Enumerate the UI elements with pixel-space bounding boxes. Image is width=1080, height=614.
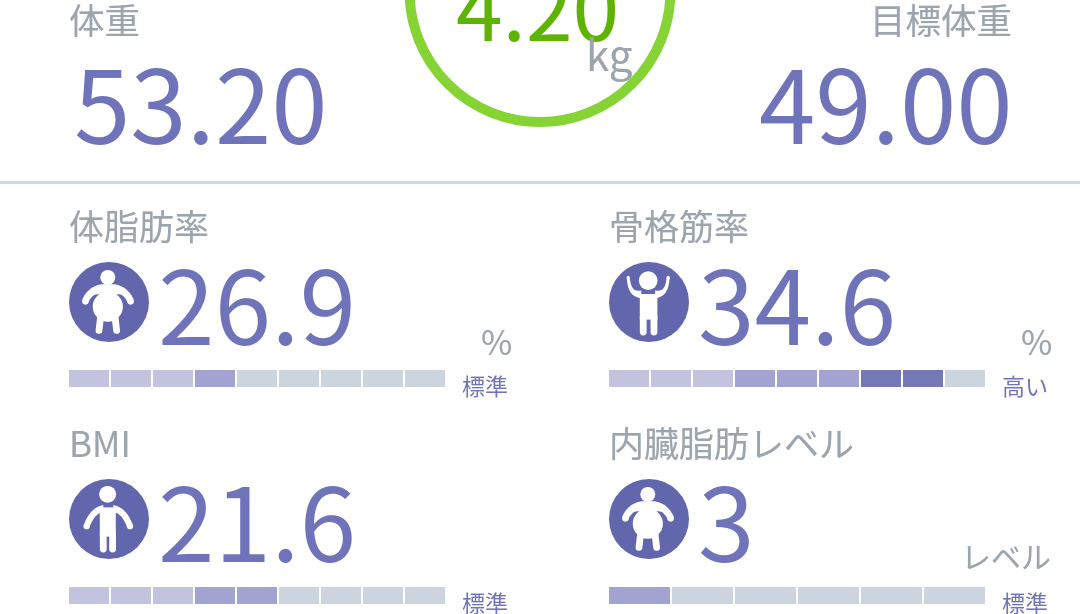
- staticText: 3: [698, 444, 755, 592]
- staticText: 53.20: [74, 26, 328, 173]
- button[interactable]: 内臓脂肪レベル: [540, 402, 1080, 614]
- button[interactable]: BMI: [0, 402, 540, 614]
- staticText: 標準: [462, 368, 508, 401]
- staticText: 目標体重: [870, 0, 1013, 44]
- button[interactable]: 体脂肪率: [0, 185, 540, 402]
- staticText: 高い: [1002, 368, 1048, 401]
- staticText: 標準: [462, 585, 508, 614]
- staticText: 34.6: [698, 227, 897, 375]
- staticText: 標準: [1002, 585, 1048, 614]
- staticText: 26.9: [158, 227, 357, 375]
- button[interactable]: 目標体重: [611, 0, 1011, 181]
- staticText: 骨格筋率: [609, 199, 750, 250]
- button[interactable]: 骨格筋率: [540, 185, 1080, 402]
- staticText: 体脂肪率: [69, 199, 210, 250]
- staticText: 体重: [69, 0, 141, 44]
- staticText: 21.6: [158, 444, 357, 592]
- button[interactable]: 体重: [69, 0, 469, 181]
- staticText: 49.00: [759, 26, 1013, 173]
- staticText: BMI: [69, 416, 131, 467]
- staticText: %: [481, 316, 513, 365]
- staticText: %: [1021, 316, 1053, 365]
- staticText: レベル: [961, 533, 1051, 576]
- staticText: kg: [586, 22, 633, 83]
- staticText: 4.20: [456, 0, 620, 66]
- staticText: 内臓脂肪レベル: [609, 416, 855, 467]
